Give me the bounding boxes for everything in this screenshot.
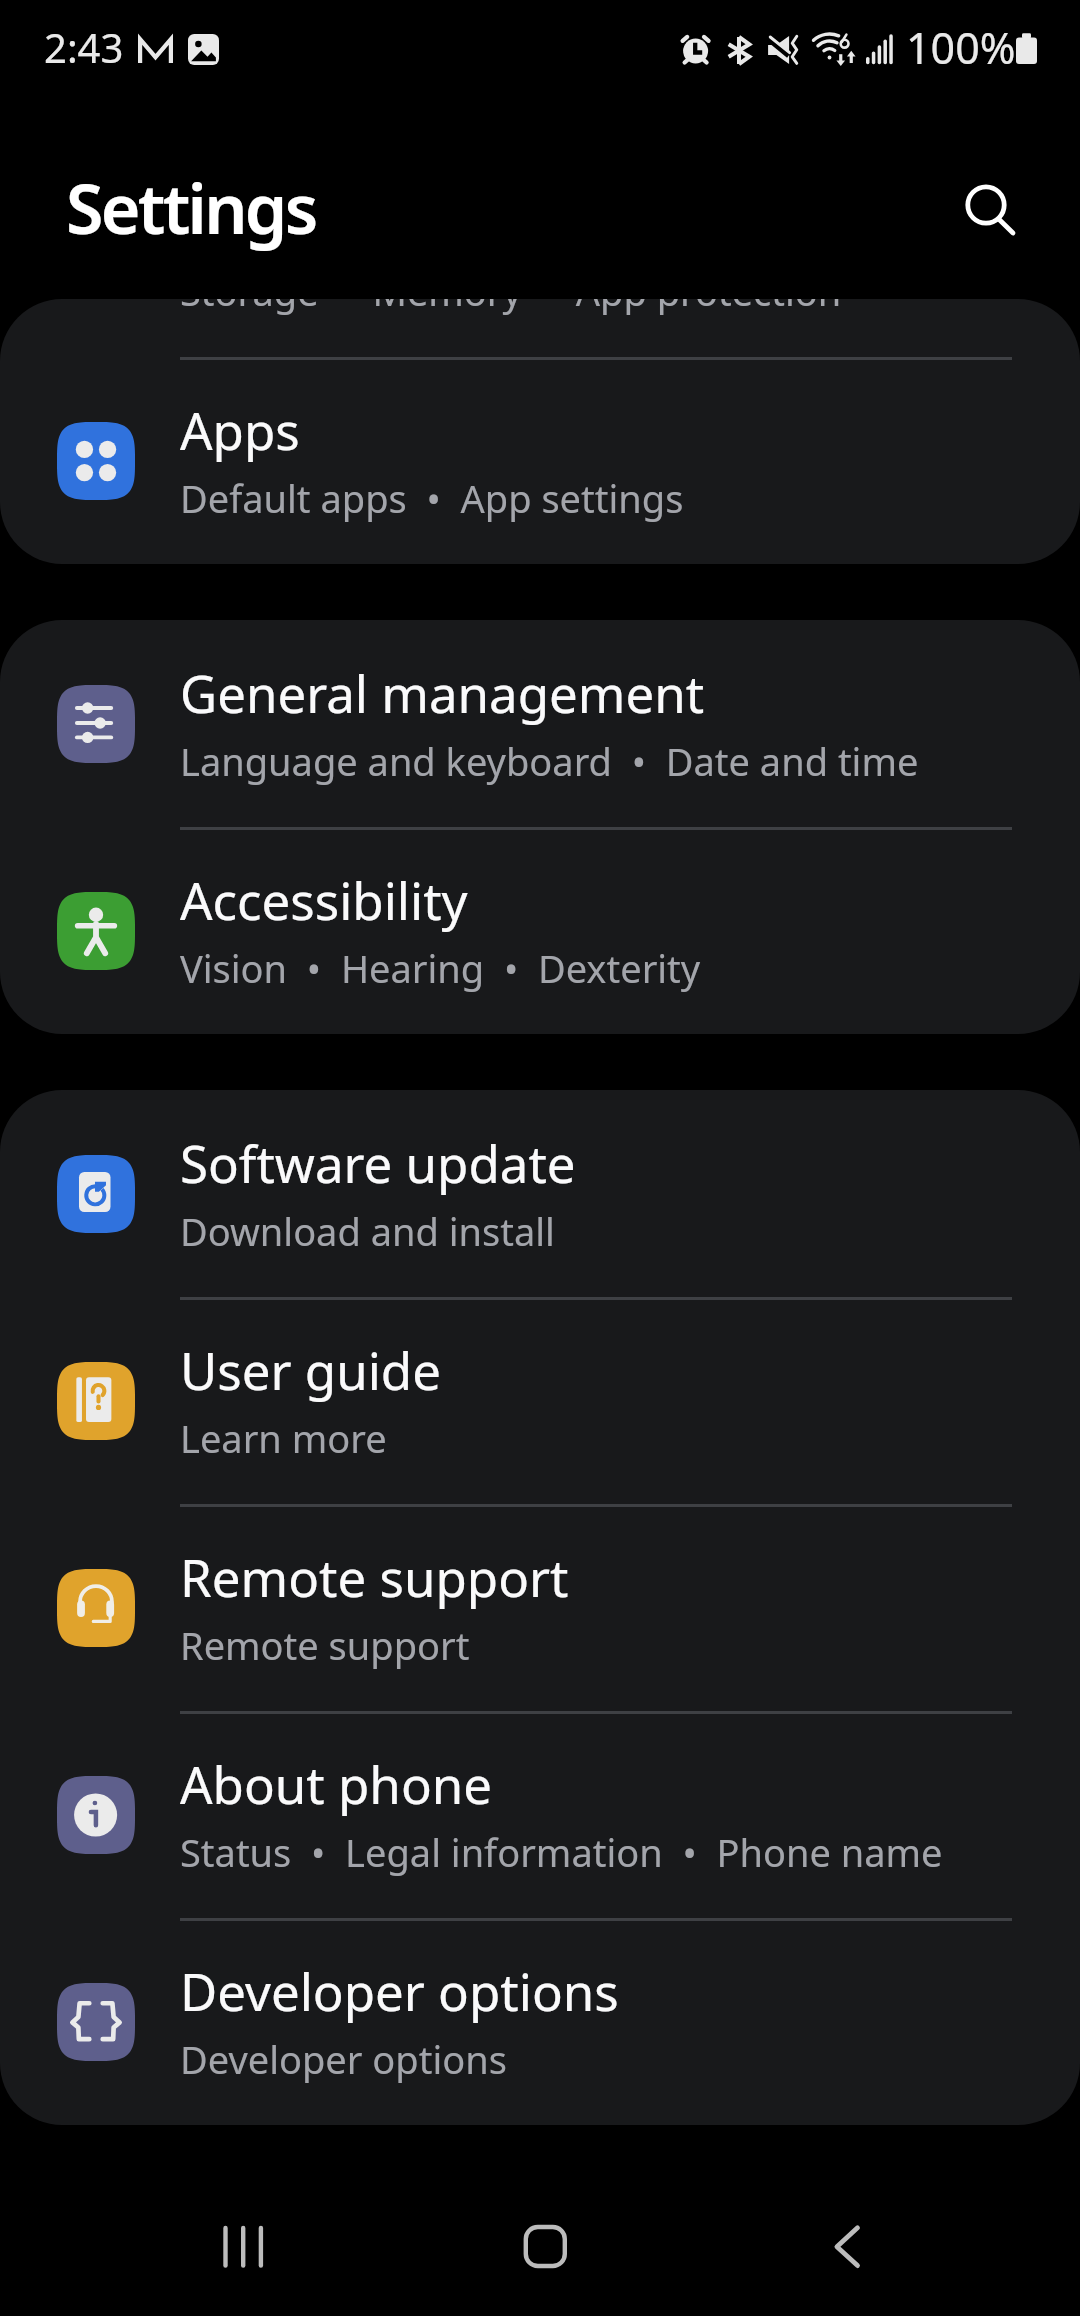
button[interactable]: Apps bbox=[0, 357, 1080, 564]
button[interactable]: General management bbox=[0, 620, 1080, 827]
staticText: 2:43 bbox=[44, 20, 124, 74]
staticText: Vision • Hearing • Dexterity bbox=[180, 942, 701, 994]
staticText: Developer options bbox=[180, 1956, 619, 2025]
staticText: Settings bbox=[66, 161, 316, 254]
staticText: Status • Legal information • Phone name bbox=[180, 1826, 943, 1878]
button[interactable]: Accessibility bbox=[0, 827, 1080, 1034]
button[interactable]: Remote support bbox=[0, 1504, 1080, 1711]
staticText: Download and install bbox=[180, 1205, 555, 1257]
staticText: Developer options bbox=[180, 2033, 507, 2085]
staticText: Apps bbox=[180, 395, 300, 464]
staticText: About phone bbox=[180, 1749, 493, 1818]
staticText: General management bbox=[180, 658, 705, 727]
button[interactable]: Search bbox=[926, 145, 1046, 265]
button[interactable]: Recents bbox=[181, 2202, 301, 2316]
staticText: Accessibility bbox=[180, 865, 468, 934]
staticText: User guide bbox=[180, 1335, 441, 1404]
button[interactable]: Software update bbox=[0, 1090, 1080, 1297]
staticText: Default apps • App settings bbox=[180, 472, 684, 524]
staticText: Storage • Memory • App protection bbox=[180, 299, 842, 317]
button[interactable]: About phone bbox=[0, 1711, 1080, 1918]
staticText: Learn more bbox=[180, 1412, 387, 1464]
button[interactable]: Home bbox=[485, 2202, 605, 2316]
button[interactable]: Battery and device care bbox=[0, 299, 1080, 357]
staticText: Remote support bbox=[180, 1542, 569, 1611]
staticText: 100% bbox=[906, 18, 1016, 77]
staticText: Remote support bbox=[180, 1619, 470, 1671]
staticText: Software update bbox=[180, 1128, 576, 1197]
staticText: Language and keyboard • Date and time bbox=[180, 735, 919, 787]
button[interactable]: User guide bbox=[0, 1297, 1080, 1504]
button[interactable]: Developer options bbox=[0, 1918, 1080, 2125]
button[interactable]: Back bbox=[788, 2202, 908, 2316]
